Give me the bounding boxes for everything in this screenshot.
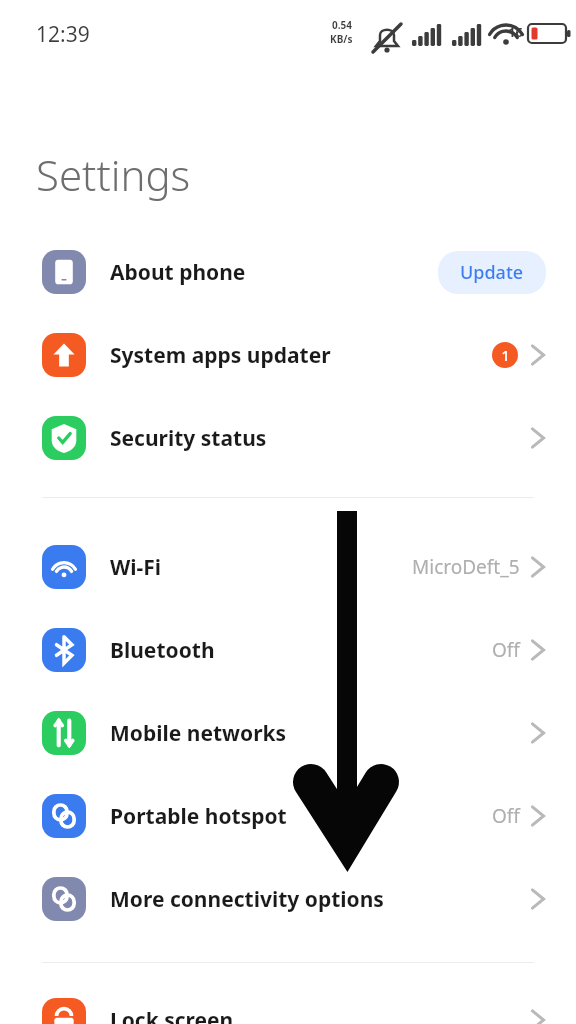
button[interactable]: Wi-Fi: [0, 545, 576, 589]
staticText: 0.54: [332, 18, 352, 32]
button[interactable]: Portable hotspot: [0, 794, 576, 838]
button[interactable]: More connectivity options: [0, 877, 576, 921]
button[interactable]: Security status: [0, 416, 576, 460]
staticText: Portable hotspot: [110, 802, 287, 831]
button[interactable]: System apps updater: [0, 333, 576, 377]
staticText: More connectivity options: [110, 885, 384, 914]
staticText: Wi-Fi: [110, 553, 162, 582]
staticText: Security status: [110, 424, 267, 453]
staticText: 12:39: [36, 20, 90, 49]
staticText: About phone: [110, 258, 246, 287]
button[interactable]: About phone: [0, 250, 576, 294]
staticText: MicroDeft_5: [412, 554, 520, 580]
button[interactable]: Update: [438, 251, 546, 294]
button[interactable]: Lock screen: [0, 998, 576, 1024]
button[interactable]: Bluetooth: [0, 628, 576, 672]
staticText: Off: [492, 803, 520, 829]
staticText: Off: [492, 637, 520, 663]
staticText: System apps updater: [110, 341, 331, 370]
staticText: Bluetooth: [110, 636, 215, 665]
staticText: Settings: [36, 146, 191, 203]
staticText: KB/s: [330, 32, 353, 46]
staticText: 1: [501, 345, 510, 365]
staticText: 16: [508, 23, 523, 41]
staticText: Mobile networks: [110, 719, 287, 748]
staticText: Update: [460, 260, 524, 285]
button[interactable]: Mobile networks: [0, 711, 576, 755]
staticText: Lock screen: [110, 1006, 234, 1024]
